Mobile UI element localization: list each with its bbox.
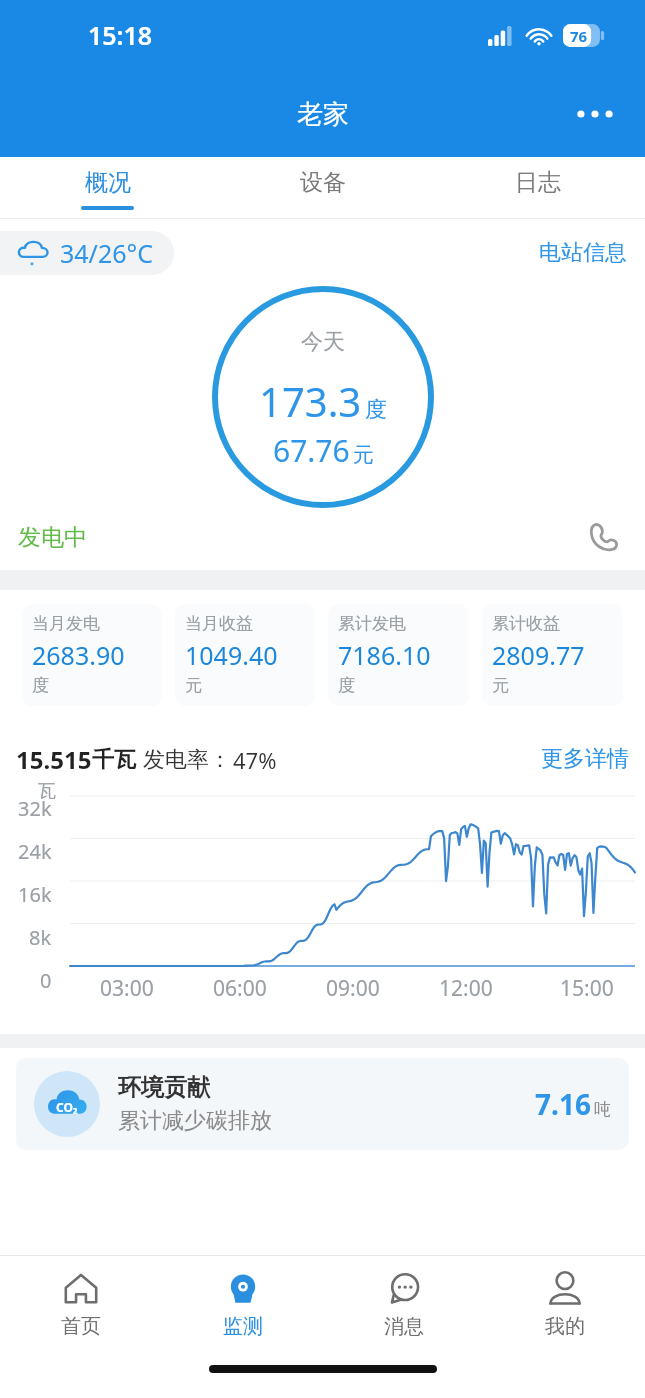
button[interactable]: 累计发电 [328,604,469,706]
button[interactable]: 我的 [484,1256,645,1356]
staticText: 消息 [384,1314,424,1339]
button[interactable]: 概况 [0,157,215,219]
button[interactable]: 电站信息 [539,239,627,267]
staticText: 0 [40,967,52,994]
staticText: 元 [492,675,509,696]
staticText: 24k [18,838,52,865]
staticText: 发电率： [143,746,231,774]
button[interactable]: 累计收益 [482,604,623,706]
button[interactable]: 设备 [215,157,430,219]
staticText: 设备 [300,168,346,197]
button[interactable]: 更多详情 [541,745,629,773]
staticText: 当月发电 [32,613,100,634]
staticText: 瓦 [38,780,56,803]
staticText: 累计减少碳排放 [118,1107,272,1135]
staticText: 16k [18,881,52,908]
staticText: 当月收益 [185,613,253,634]
staticText: 我的 [545,1314,585,1339]
staticText: 76 [570,26,588,46]
staticText: 06:00 [213,974,267,1003]
staticText: 34/26°C [60,236,154,270]
staticText: 03:00 [100,974,154,1003]
button[interactable]: 34/26°C [0,231,174,275]
staticText: 首页 [61,1314,101,1339]
staticText: 8k [29,924,52,951]
staticText: 发电中 [18,523,87,552]
staticText: 监测 [223,1314,263,1339]
staticText: CO₂ [56,1099,78,1115]
staticText: 15:00 [560,974,614,1003]
button[interactable]: 监测 [162,1256,323,1356]
staticText: 今天 [301,328,345,356]
staticText: 12:00 [439,974,493,1003]
staticText: 2683.90 [32,638,125,672]
staticText: 09:00 [326,974,380,1003]
button[interactable]: 消息 [323,1256,484,1356]
staticText: 度 [338,675,355,696]
button[interactable]: 当月收益 [175,604,315,706]
staticText: 2809.77 [492,638,585,672]
staticText: 吨 [594,1099,611,1120]
button[interactable]: More options [567,92,623,136]
staticText: 32k [18,795,52,822]
staticText: 累计发电 [338,613,406,634]
button[interactable]: 日志 [430,157,645,219]
staticText: 元 [185,675,202,696]
button[interactable]: Call [579,514,627,560]
staticText: 千瓦 [92,746,136,774]
staticText: 度 [365,396,387,424]
staticText: 环境贡献 [118,1073,210,1102]
staticText: 15.515 [16,743,92,776]
staticText: 元 [353,442,374,468]
staticText: 7.16 [535,1085,591,1123]
staticText: 概况 [85,168,131,197]
staticText: 7186.10 [338,638,431,672]
button[interactable]: CO₂ [16,1058,629,1150]
staticText: 1049.40 [185,638,278,672]
staticText: 度 [32,675,49,696]
button[interactable]: 首页 [0,1256,162,1356]
staticText: 老家 [297,98,349,131]
staticText: 47% [233,745,277,775]
staticText: 日志 [515,168,561,197]
staticText: 67.76 [273,430,350,471]
staticText: 173.3 [259,374,362,428]
staticText: 15:18 [88,18,153,52]
button[interactable]: 当月发电 [22,604,162,706]
staticText: 累计收益 [492,613,560,634]
